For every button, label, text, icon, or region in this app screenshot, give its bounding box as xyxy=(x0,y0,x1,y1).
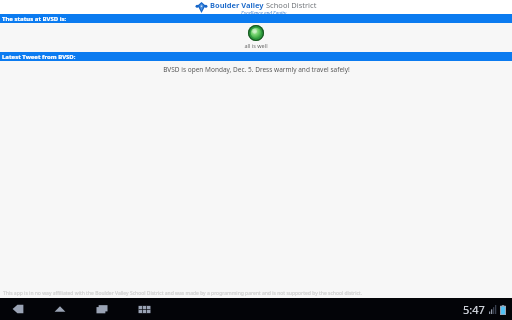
staticText: 5:47 xyxy=(463,302,485,317)
staticText: Excellence and Equity xyxy=(241,10,287,14)
button[interactable]: Back xyxy=(8,299,28,319)
button[interactable]: Keyboard xyxy=(134,299,154,319)
staticText: Boulder Valley xyxy=(210,0,264,10)
button[interactable]: The status at BVSD is: xyxy=(0,14,512,23)
staticText: BVSD is open Monday, Dec. 5. Dress warml… xyxy=(163,65,350,74)
staticText: School District xyxy=(266,0,317,10)
button[interactable]: Latest Tweet from BVSD: xyxy=(0,52,512,61)
button[interactable]: all is well xyxy=(0,23,512,52)
button[interactable]: BVSD is open Monday, Dec. 5. Dress warml… xyxy=(0,61,512,77)
staticText: The status at BVSD is: xyxy=(2,15,67,23)
button[interactable]: Recent apps xyxy=(92,299,112,319)
staticText: This app is in no way affiliated with th… xyxy=(3,290,362,297)
staticText: all is well xyxy=(244,42,268,49)
button[interactable]: Home xyxy=(50,299,70,319)
staticText: Latest Tweet from BVSD: xyxy=(2,53,76,61)
